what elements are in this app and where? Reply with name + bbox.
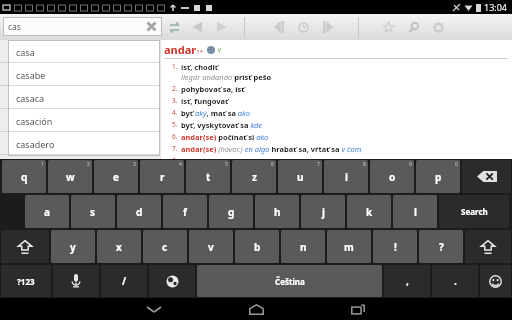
staticText: s <box>90 205 96 219</box>
staticText: casa <box>12 46 30 58</box>
button[interactable]: casabe <box>0 63 160 86</box>
button[interactable]: p <box>416 160 460 193</box>
button[interactable]: c <box>143 230 187 263</box>
button[interactable]: Change language <box>149 265 195 297</box>
staticText: 2 <box>87 161 90 168</box>
button[interactable]: m <box>327 230 371 263</box>
button[interactable]: u <box>278 160 322 193</box>
staticText: , <box>406 274 409 288</box>
button[interactable]: casadero <box>0 132 160 155</box>
button[interactable]: Forward <box>318 18 336 36</box>
button[interactable]: 5. <box>164 120 512 130</box>
button[interactable]: y <box>51 230 95 263</box>
staticText: u <box>297 170 304 184</box>
button[interactable]: a <box>25 195 69 228</box>
staticText: w <box>66 170 75 184</box>
button[interactable]: 1. <box>164 62 512 72</box>
button[interactable]: q <box>2 160 46 193</box>
button[interactable]: Back <box>137 298 171 320</box>
button[interactable]: History <box>296 20 311 35</box>
button[interactable]: i <box>324 160 368 193</box>
button[interactable]: 6. <box>164 132 512 142</box>
button[interactable]: v <box>189 230 233 263</box>
button[interactable]: n <box>281 230 325 263</box>
staticText: Search <box>461 206 488 217</box>
button[interactable]: k <box>347 195 391 228</box>
staticText: o <box>389 170 396 184</box>
button[interactable]: Emoji <box>480 265 511 297</box>
button[interactable]: b <box>235 230 279 263</box>
button[interactable]: d <box>117 195 161 228</box>
button[interactable]: 8. <box>164 156 512 159</box>
button[interactable]: / <box>101 265 147 297</box>
button[interactable]: Backspace <box>462 160 511 193</box>
staticText: Čeština <box>275 276 305 287</box>
staticText: casadero <box>12 138 49 150</box>
staticText: 3 <box>133 161 136 168</box>
button[interactable]: o <box>370 160 414 193</box>
button[interactable]: Recent apps <box>341 298 375 320</box>
staticText: t <box>206 170 211 184</box>
button[interactable]: w <box>48 160 92 193</box>
button[interactable]: ? <box>419 230 463 263</box>
staticText: 1 <box>41 161 44 168</box>
button[interactable]: Čeština <box>197 265 382 297</box>
button[interactable]: casabe <box>8 63 160 86</box>
button[interactable]: g <box>209 195 253 228</box>
staticText: 6. <box>172 132 178 141</box>
button[interactable]: casadero <box>8 132 160 155</box>
button[interactable]: casa <box>0 40 160 63</box>
button[interactable]: t <box>186 160 230 193</box>
button[interactable]: casa <box>8 40 160 63</box>
button[interactable]: Settings <box>431 20 446 35</box>
button[interactable]: Favorite <box>381 20 396 35</box>
button[interactable]: f <box>163 195 207 228</box>
button[interactable]: Search <box>439 195 509 228</box>
button[interactable]: casación <box>0 109 160 132</box>
button[interactable]: , <box>384 265 430 297</box>
staticText: byť aký, mať sa ako <box>181 108 250 118</box>
staticText: h <box>274 205 281 219</box>
button[interactable]: Swap languages <box>166 19 183 36</box>
button[interactable]: 3. <box>164 96 512 106</box>
staticText: n <box>300 240 307 254</box>
button[interactable]: e <box>94 160 138 193</box>
button[interactable]: Home <box>239 298 273 320</box>
staticText: byť, vyskytovať sa kde <box>181 120 263 130</box>
button[interactable]: Pronounce <box>207 46 215 54</box>
staticText: y <box>70 240 76 254</box>
button[interactable]: cas <box>3 17 162 36</box>
button[interactable]: x <box>97 230 141 263</box>
button[interactable]: casaca <box>0 86 160 109</box>
button[interactable]: Back <box>271 18 289 36</box>
button[interactable]: Search <box>406 20 421 35</box>
button[interactable]: Shift <box>465 230 511 263</box>
button[interactable]: Next <box>214 19 230 35</box>
button[interactable]: Previous <box>189 19 205 35</box>
button[interactable]: z <box>232 160 276 193</box>
button[interactable]: r <box>140 160 184 193</box>
button[interactable]: h <box>255 195 299 228</box>
button[interactable]: 4. <box>164 108 512 118</box>
button[interactable]: l <box>393 195 437 228</box>
staticText: llegar andando prísť pešo <box>181 72 272 82</box>
button[interactable]: j <box>301 195 345 228</box>
button[interactable]: ! <box>373 230 417 263</box>
button[interactable]: . <box>432 265 478 297</box>
button[interactable]: casación <box>8 109 160 132</box>
button[interactable]: casaca <box>8 86 160 109</box>
staticText: ? <box>439 240 444 254</box>
staticText: r <box>160 170 165 184</box>
staticText: m <box>344 240 354 254</box>
staticText: casabe <box>16 69 46 81</box>
staticText: cas <box>8 21 21 33</box>
button[interactable]: Clear <box>144 19 159 34</box>
staticText: k <box>366 205 373 219</box>
button[interactable]: 2. <box>164 84 512 94</box>
button[interactable]: ?123 <box>1 265 51 297</box>
button[interactable]: s <box>71 195 115 228</box>
button[interactable]: 7. <box>164 144 512 154</box>
button[interactable]: Shift <box>1 230 49 263</box>
button[interactable]: Voice input <box>53 265 99 297</box>
